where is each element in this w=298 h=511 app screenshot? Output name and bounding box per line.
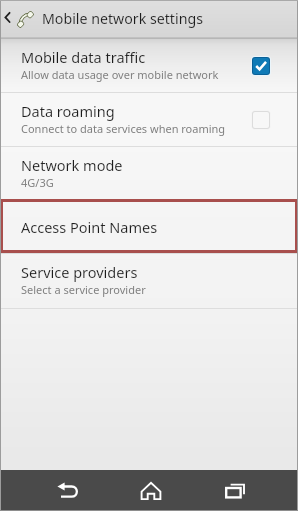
staticText: Service providers — [21, 262, 138, 282]
staticText: Mobile data traffic — [21, 47, 146, 67]
button[interactable]: Disabled — [250, 109, 271, 130]
staticText: Network mode — [21, 155, 123, 175]
staticText: Data roaming — [21, 101, 115, 121]
staticText: Select a service provider — [21, 282, 146, 297]
staticText: Access Point Names — [21, 217, 158, 237]
staticText: Connect to data services when roaming — [21, 121, 226, 136]
button[interactable]: Home — [109, 470, 193, 511]
button[interactable]: Mobile data traffic — [0, 39, 298, 92]
staticText: Mobile network settings — [42, 9, 203, 28]
button[interactable]: Service providers — [0, 254, 298, 308]
button[interactable]: Back — [0, 0, 15, 39]
staticText: Allow data usage over mobile network — [21, 67, 219, 82]
button[interactable]: Back — [26, 470, 110, 511]
button[interactable]: Access Point Names — [0, 200, 298, 253]
button[interactable]: Data roaming — [0, 93, 298, 146]
button[interactable]: Network mode — [0, 147, 298, 199]
button[interactable]: Enabled — [250, 55, 271, 76]
button[interactable]: Recent apps — [193, 470, 277, 511]
staticText: 4G/3G — [21, 175, 54, 190]
